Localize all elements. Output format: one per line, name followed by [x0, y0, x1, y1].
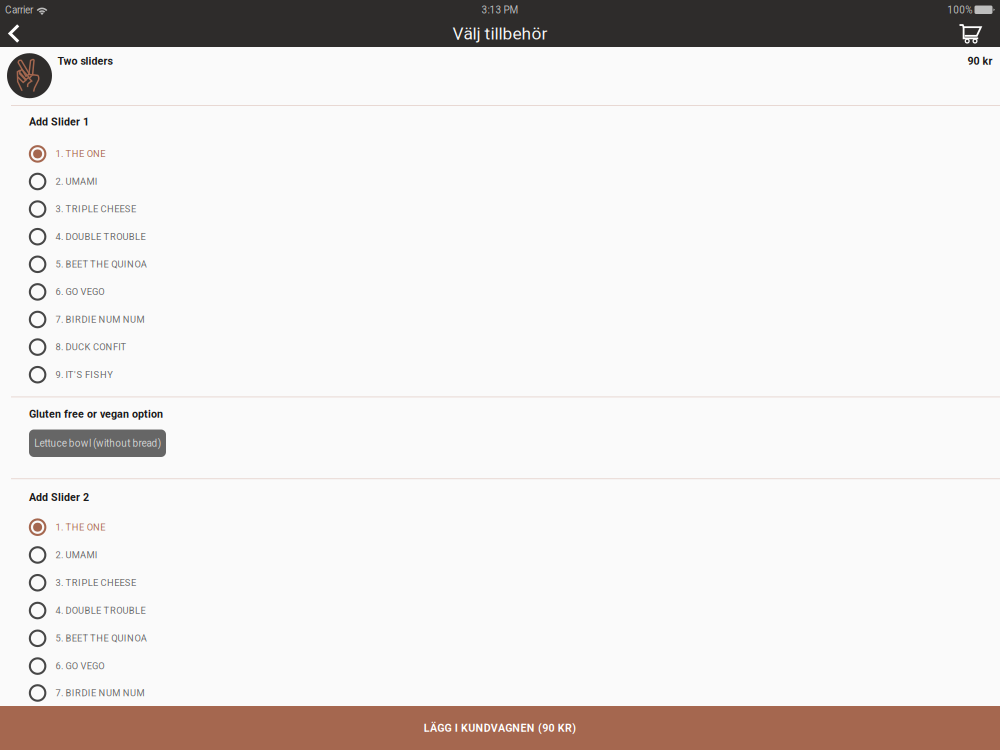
button[interactable]: Back	[0, 20, 44, 47]
button[interactable]: 9. IT'S FISHY	[0, 361, 1000, 388]
button[interactable]: 6. GO VEGO	[0, 278, 1000, 306]
staticText: 3. TRIPLE CHEESE	[56, 204, 136, 214]
button[interactable]: 3. TRIPLE CHEESE	[0, 195, 1000, 223]
staticText: 8. DUCK CONFIT	[56, 342, 126, 352]
button[interactable]: 7. BIRDIE NUM NUM	[0, 306, 1000, 333]
button[interactable]: LÄGG I KUNDVAGNEN (90 KR)	[0, 706, 1000, 750]
button[interactable]: 6. GO VEGO	[0, 652, 1000, 680]
staticText: Lettuce bowl (without bread)	[34, 437, 161, 449]
button[interactable]: 5. BEET THE QUINOA	[0, 624, 1000, 652]
staticText: LÄGG I KUNDVAGNEN (90 KR)	[424, 722, 576, 734]
button[interactable]: 5. BEET THE QUINOA	[0, 250, 1000, 278]
staticText: 2. UMAMI	[56, 176, 98, 187]
staticText: Add Slider 1	[29, 116, 89, 128]
button[interactable]: 3. TRIPLE CHEESE	[0, 569, 1000, 597]
button[interactable]: 4. DOUBLE TROUBLE	[0, 223, 1000, 250]
staticText: Add Slider 2	[29, 491, 89, 503]
staticText: 9. IT'S FISHY	[56, 369, 113, 380]
staticText: 3:13 PM	[481, 4, 518, 16]
button[interactable]: 2. UMAMI	[0, 168, 1000, 195]
staticText: Välj tillbehör	[452, 23, 547, 44]
staticText: 4. DOUBLE TROUBLE	[56, 231, 145, 242]
staticText: 4. DOUBLE TROUBLE	[56, 605, 145, 616]
staticText: 1. THE ONE	[56, 148, 105, 159]
button[interactable]: 7. BIRDIE NUM NUM	[0, 680, 1000, 706]
staticText: 3. TRIPLE CHEESE	[56, 577, 136, 588]
staticText: 6. GO VEGO	[56, 286, 104, 297]
staticText: Carrier	[5, 4, 33, 16]
staticText: 5. BEET THE QUINOA	[56, 259, 147, 270]
staticText: 90 kr	[968, 55, 993, 67]
staticText: Gluten free or vegan option	[29, 408, 163, 420]
button[interactable]: 2. UMAMI	[0, 541, 1000, 569]
button[interactable]: Shopping cart	[952, 20, 1000, 47]
button[interactable]: 4. DOUBLE TROUBLE	[0, 597, 1000, 624]
button[interactable]: Lettuce bowl (without bread)	[29, 429, 166, 457]
staticText: 7. BIRDIE NUM NUM	[56, 687, 144, 698]
button[interactable]: 1. THE ONE	[0, 513, 1000, 541]
staticText: 1. THE ONE	[56, 522, 105, 533]
staticText: 6. GO VEGO	[56, 661, 104, 671]
staticText: 2. UMAMI	[56, 549, 98, 560]
staticText: 7. BIRDIE NUM NUM	[56, 314, 144, 325]
button[interactable]: 8. DUCK CONFIT	[0, 333, 1000, 361]
staticText: Two sliders	[57, 55, 112, 67]
staticText: 5. BEET THE QUINOA	[56, 633, 147, 644]
staticText: 100%	[947, 4, 972, 16]
button[interactable]: 1. THE ONE	[0, 140, 1000, 168]
